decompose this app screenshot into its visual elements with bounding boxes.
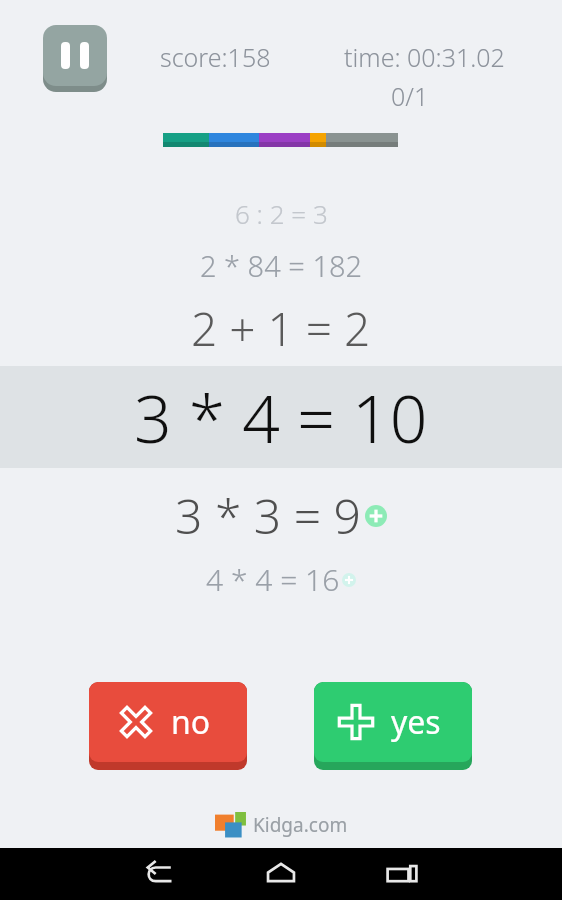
button[interactable]: Back [142,856,178,892]
button[interactable]: Pause [43,25,107,92]
staticText: no [171,700,211,744]
staticText: 4 * 4 = 16 [206,559,340,600]
staticText: 0/1 [391,79,429,113]
staticText: yes [391,700,441,744]
staticText: 2 * 84 = 182 [200,246,363,285]
staticText: Kidga.com [253,812,348,838]
staticText: 2 + 1 = 2 [191,297,371,360]
button[interactable]: no [89,682,247,770]
button[interactable]: Recent apps [384,856,420,892]
staticText: time: 00:31.02 [344,40,505,74]
staticText: 6 : 2 = 3 [235,196,328,231]
button[interactable]: yes [314,682,472,770]
button[interactable]: 3 * 4 = 10 [0,366,562,468]
staticText: score:158 [160,40,271,74]
button[interactable]: Home [263,856,299,892]
staticText: 3 * 3 = 9 [175,483,362,548]
staticText: 3 * 4 = 10 [134,372,428,462]
